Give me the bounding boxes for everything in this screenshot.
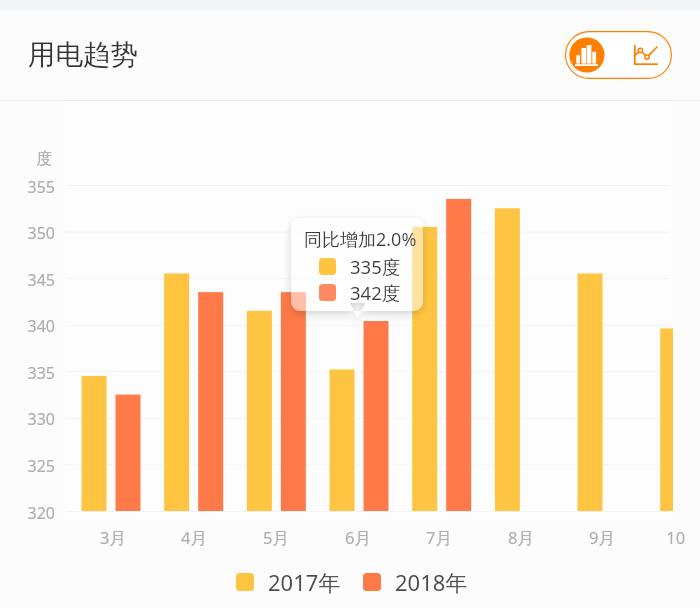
staticText: 10月: [654, 526, 686, 549]
button[interactable]: Bar chart view: [565, 31, 609, 79]
staticText: 320: [21, 502, 55, 524]
staticText: 345: [21, 269, 55, 291]
button[interactable]: Line chart view: [609, 31, 672, 79]
staticText: 8月: [491, 526, 551, 549]
staticText: 355: [21, 176, 55, 198]
staticText: 335: [21, 362, 55, 384]
staticText: 2017年: [268, 567, 341, 597]
staticText: 3月: [83, 526, 143, 549]
staticText: 350: [21, 222, 55, 244]
staticText: 6月: [328, 526, 388, 549]
staticText: 4月: [164, 526, 224, 549]
staticText: 7月: [409, 526, 469, 549]
staticText: 度: [36, 149, 52, 169]
staticText: 9月: [572, 526, 632, 549]
staticText: 2018年: [395, 567, 468, 597]
staticText: 同比增加2.0%: [304, 227, 417, 252]
staticText: 340: [21, 315, 55, 337]
staticText: 用电趋势: [28, 38, 138, 73]
staticText: 330: [21, 408, 55, 430]
staticText: 5月: [246, 526, 306, 549]
staticText: 335度: [350, 254, 401, 279]
staticText: 342度: [350, 280, 401, 305]
staticText: 325: [21, 455, 55, 477]
